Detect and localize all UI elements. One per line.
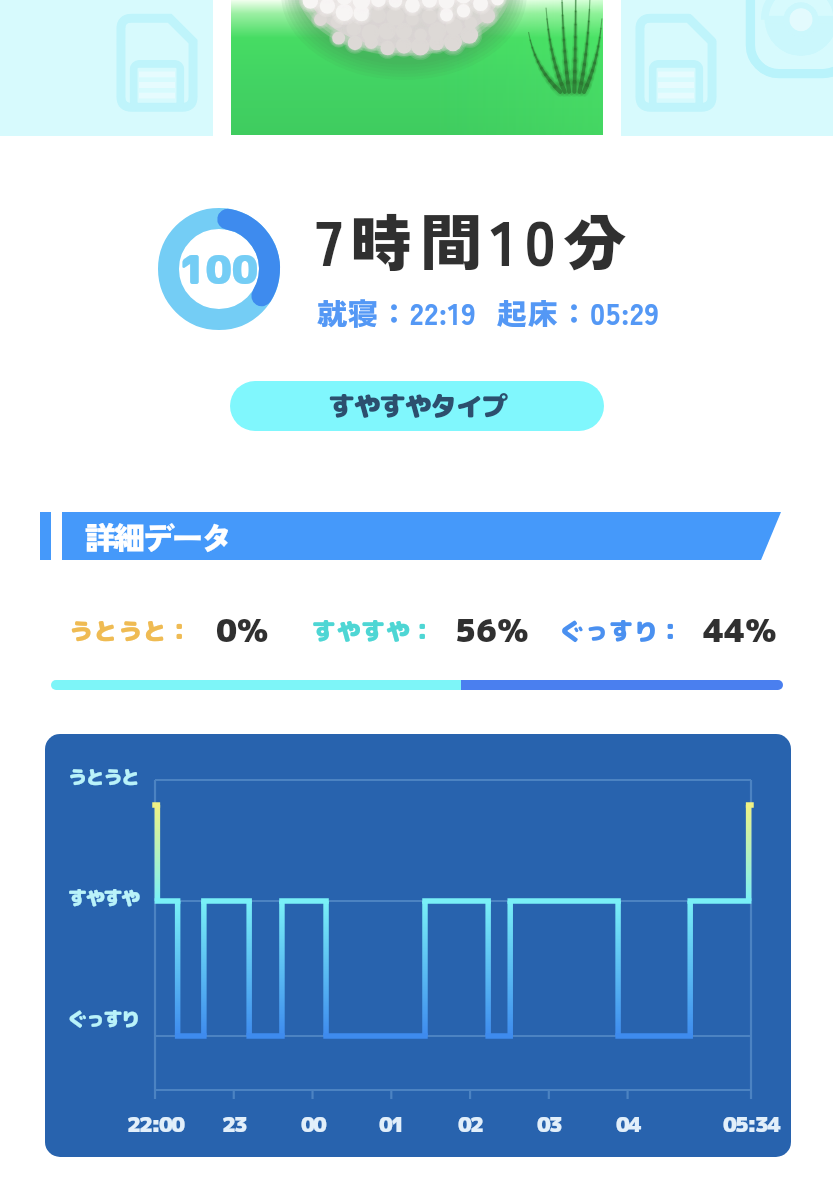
staticText: 00	[301, 1109, 326, 1138]
button[interactable]: すやすやタイプ	[230, 381, 604, 431]
staticText: 04	[616, 1109, 641, 1138]
staticText: ぐっすり	[68, 1006, 139, 1033]
staticText: 0%	[216, 608, 269, 652]
staticText: すやすやタイプ	[328, 387, 507, 425]
staticText: 03	[537, 1109, 562, 1138]
staticText: 23	[222, 1109, 247, 1138]
staticText: 02	[458, 1109, 483, 1138]
staticText: 22:00	[127, 1109, 184, 1138]
staticText: 56%	[455, 608, 529, 652]
staticText: うとうと	[68, 764, 139, 791]
staticText: 100	[179, 241, 259, 297]
staticText: すやすや：	[312, 614, 435, 647]
staticText: 44%	[703, 608, 777, 652]
staticText: すやすや	[68, 885, 139, 912]
staticText: 7時間10分	[316, 194, 634, 284]
staticText: 就寝：22:19	[317, 290, 477, 333]
staticText: うとうと：	[69, 614, 192, 647]
staticText: 05:34	[723, 1109, 780, 1138]
staticText: 01	[379, 1109, 404, 1138]
staticText: 起床：05:29	[497, 290, 660, 333]
staticText: ぐっすり：	[560, 614, 683, 647]
staticText: 詳細データ	[84, 513, 231, 559]
